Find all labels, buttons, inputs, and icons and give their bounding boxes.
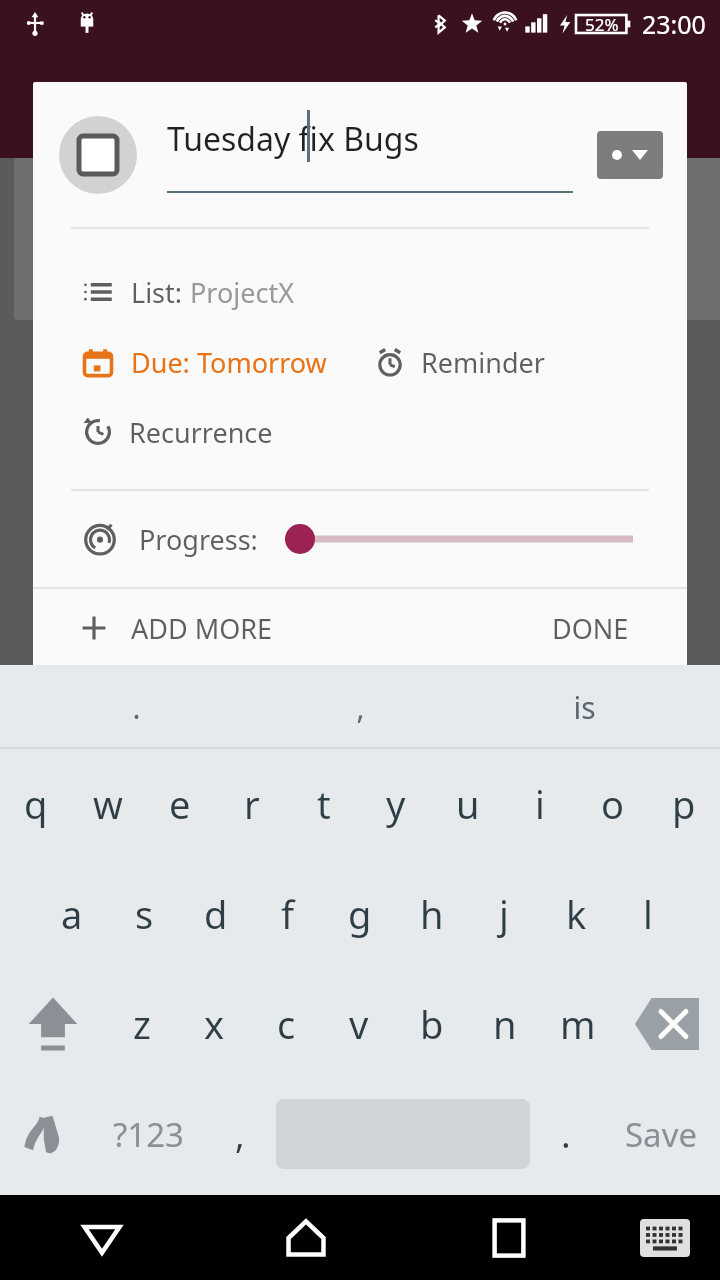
staticText: ProjectX	[190, 274, 295, 311]
button[interactable]: n	[468, 969, 541, 1079]
button[interactable]: a	[36, 859, 108, 969]
staticText: .	[561, 1110, 571, 1159]
staticText: z	[133, 998, 151, 1050]
button[interactable]: x	[178, 969, 250, 1079]
staticText: List:	[131, 274, 190, 311]
staticText: ,	[235, 1110, 245, 1159]
button[interactable]: d	[180, 859, 252, 969]
staticText: Tomorrow	[197, 344, 327, 381]
staticText: Progress:	[139, 521, 258, 558]
button[interactable]: Shift	[0, 969, 106, 1079]
staticText: y	[386, 778, 406, 830]
button[interactable]: Reminder	[375, 344, 545, 381]
button[interactable]: is	[472, 665, 696, 749]
staticText: r	[244, 778, 260, 830]
button[interactable]: v	[322, 969, 395, 1079]
staticText: ,	[356, 687, 365, 728]
staticText: 23:00	[642, 7, 706, 41]
staticText: d	[204, 888, 228, 940]
button[interactable]: g	[324, 859, 396, 969]
button[interactable]: l	[612, 859, 684, 969]
staticText: is	[573, 687, 596, 728]
button[interactable]: Toggle complete	[59, 116, 137, 194]
staticText: Save	[625, 1112, 698, 1157]
button[interactable]: c	[250, 969, 322, 1079]
button[interactable]: j	[468, 859, 540, 969]
staticText: Due:	[131, 344, 197, 381]
button[interactable]: u	[432, 749, 504, 859]
button[interactable]: Recurrence	[33, 397, 687, 467]
button[interactable]: ADD MORE	[33, 589, 293, 667]
staticText: ADD MORE	[131, 610, 273, 647]
staticText: e	[169, 778, 191, 830]
staticText: o	[601, 778, 624, 830]
staticText: k	[566, 888, 587, 940]
button[interactable]: List:	[33, 257, 687, 327]
button[interactable]: Recents	[407, 1195, 610, 1280]
button[interactable]: ?123	[92, 1079, 204, 1189]
staticText: s	[135, 888, 154, 940]
button[interactable]: .	[530, 1079, 602, 1189]
staticText: i	[535, 778, 545, 830]
button[interactable]: DONE	[522, 589, 659, 667]
staticText: Reminder	[421, 344, 545, 381]
button[interactable]: s	[108, 859, 180, 969]
button[interactable]: q	[0, 749, 72, 859]
staticText: l	[643, 888, 653, 940]
button[interactable]: Progress slider	[288, 519, 637, 559]
staticText: ?123	[113, 1112, 184, 1157]
staticText: n	[493, 998, 517, 1050]
button[interactable]: Due:	[83, 344, 327, 381]
button[interactable]: .	[24, 665, 248, 749]
staticText: u	[456, 778, 480, 830]
staticText: x	[204, 998, 225, 1050]
button[interactable]: r	[216, 749, 288, 859]
button[interactable]: k	[540, 859, 612, 969]
staticText: 52%	[585, 13, 619, 36]
button[interactable]: y	[360, 749, 432, 859]
staticText: t	[317, 778, 331, 830]
staticText: w	[93, 778, 123, 830]
staticText: q	[24, 778, 48, 830]
staticText: DONE	[552, 610, 629, 647]
button[interactable]: o	[576, 749, 648, 859]
button[interactable]: Change input method	[0, 1079, 92, 1189]
staticText: p	[672, 778, 696, 830]
staticText: f	[281, 888, 295, 940]
staticText: Recurrence	[129, 414, 273, 451]
staticText: h	[420, 888, 444, 940]
button[interactable]: e	[144, 749, 216, 859]
staticText: j	[499, 888, 509, 940]
button[interactable]: f	[252, 859, 324, 969]
button[interactable]: h	[396, 859, 468, 969]
staticText: a	[61, 888, 83, 940]
button[interactable]: Priority	[597, 131, 663, 179]
staticText: m	[560, 998, 596, 1050]
button[interactable]: Back	[0, 1195, 204, 1280]
staticText: b	[420, 998, 444, 1050]
button[interactable]: Home	[204, 1195, 407, 1280]
button[interactable]: Backspace	[614, 969, 720, 1079]
staticText: g	[348, 888, 372, 940]
button[interactable]: z	[106, 969, 178, 1079]
staticText: v	[349, 998, 369, 1050]
button[interactable]: Save	[602, 1079, 720, 1189]
button[interactable]: ,	[204, 1079, 276, 1189]
staticText: .	[132, 687, 141, 728]
button[interactable]: t	[288, 749, 360, 859]
button[interactable]: b	[395, 969, 468, 1079]
button[interactable]: p	[648, 749, 720, 859]
button[interactable]: m	[541, 969, 614, 1079]
button[interactable]: Hide keyboard	[610, 1195, 720, 1280]
button[interactable]: ,	[248, 665, 472, 749]
button[interactable]: w	[72, 749, 144, 859]
button[interactable]: i	[504, 749, 576, 859]
staticText: Tuesday fix Bugs	[167, 117, 419, 161]
staticText: c	[277, 998, 296, 1050]
